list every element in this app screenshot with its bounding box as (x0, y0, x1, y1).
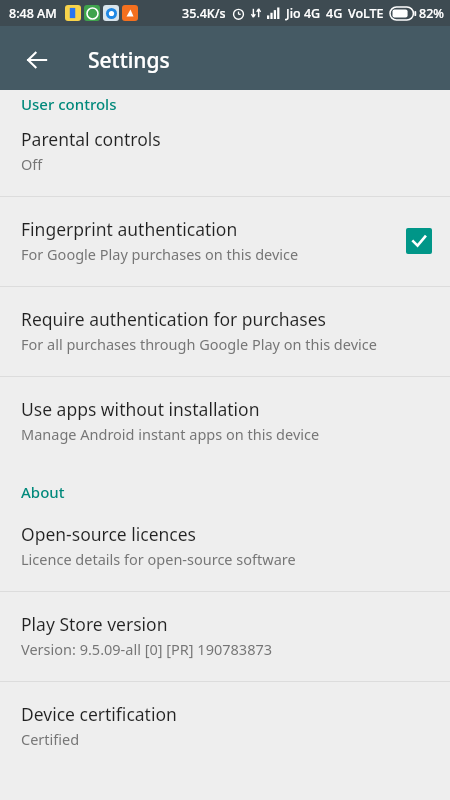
staticText: Version: 9.5.09-all [0] [PR] 190783873 (21, 639, 273, 659)
staticText: 35.4K/s (182, 5, 226, 22)
staticText: VoLTE (348, 5, 384, 22)
button[interactable]: Play Store version (0, 592, 450, 681)
staticText: Jio 4G (286, 5, 321, 22)
button[interactable]: Use apps without installation (0, 377, 450, 466)
staticText: 8:48 AM (9, 5, 57, 22)
button[interactable]: Fingerprint authentication (0, 197, 450, 286)
staticText: Manage Android instant apps on this devi… (21, 424, 320, 444)
staticText: Use apps without installation (21, 397, 260, 421)
staticText: Off (21, 154, 43, 174)
button[interactable]: Device certification (0, 682, 450, 771)
staticText: Open-source licences (21, 522, 196, 546)
staticText: Require authentication for purchases (21, 307, 326, 331)
staticText: Parental controls (21, 127, 161, 151)
staticText: User controls (21, 94, 117, 113)
staticText: Fingerprint authentication (21, 217, 238, 241)
staticText: For all purchases through Google Play on… (21, 334, 377, 354)
staticText: 4G (326, 5, 343, 22)
button[interactable]: Require authentication for purchases (0, 287, 450, 376)
staticText: Play Store version (21, 612, 168, 636)
staticText: About (21, 482, 450, 502)
staticText: For Google Play purchases on this device (21, 244, 299, 264)
staticText: 82% (419, 5, 444, 22)
staticText: Certified (21, 729, 80, 749)
button[interactable]: Open-source licences (0, 502, 450, 591)
button[interactable]: Back (13, 36, 61, 84)
staticText: Settings (88, 46, 170, 75)
staticText: Device certification (21, 702, 177, 726)
button[interactable]: Parental controls (0, 109, 450, 196)
staticText: Licence details for open-source software (21, 549, 296, 569)
